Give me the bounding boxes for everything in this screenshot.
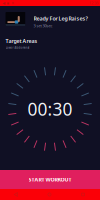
staticText: 00:30 [27, 97, 72, 120]
staticText: 12:38 [89, 0, 98, 6]
button[interactable]: Home [33, 189, 66, 200]
staticText: 3 set 30sec [33, 23, 52, 28]
staticText: Target Areas [5, 37, 37, 44]
staticText: ◀ [2, 1, 5, 5]
button[interactable]: Recent apps [66, 189, 100, 200]
staticText: ▪ [6, 1, 9, 5]
staticText: ✕ [11, 1, 14, 5]
button[interactable]: Back [0, 189, 33, 200]
staticText: Lower Abdominal [5, 46, 29, 49]
button[interactable]: START WORKOUT [0, 170, 100, 189]
staticText: Ready For Leg Raises? [33, 15, 87, 22]
staticText: START WORKOUT [28, 176, 71, 183]
